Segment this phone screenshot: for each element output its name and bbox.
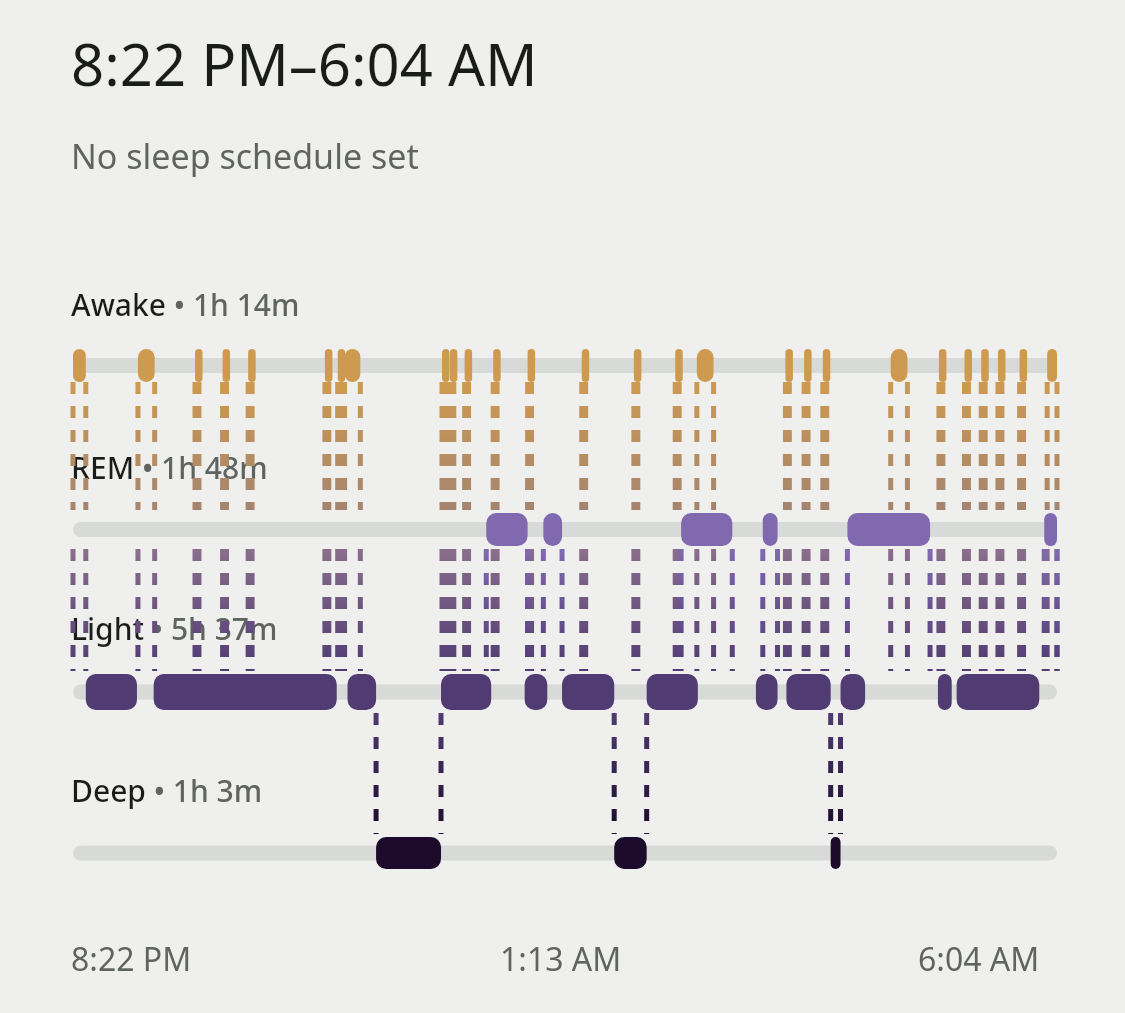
staticText: 1:13 AM bbox=[500, 937, 622, 981]
button[interactable]: REM • 1h 48m bbox=[71, 447, 268, 488]
staticText: 8:22 PM bbox=[71, 937, 192, 981]
staticText: Awake • 1h 14m bbox=[71, 284, 300, 325]
button[interactable]: Awake • 1h 14m bbox=[71, 284, 300, 325]
staticText: REM • 1h 48m bbox=[71, 447, 268, 488]
staticText: 8:22 PM–6:04 AM bbox=[71, 24, 538, 103]
button[interactable]: Deep • 1h 3m bbox=[71, 770, 263, 811]
button[interactable]: 8:22 PM–6:04 AM bbox=[71, 24, 538, 103]
button[interactable]: No sleep schedule set bbox=[71, 133, 419, 179]
staticText: Light • 5h 37m bbox=[71, 608, 278, 649]
button[interactable]: Light • 5h 37m bbox=[71, 608, 278, 649]
staticText: 6:04 AM bbox=[918, 937, 1040, 981]
staticText: Deep • 1h 3m bbox=[71, 770, 263, 811]
staticText: No sleep schedule set bbox=[71, 133, 419, 179]
